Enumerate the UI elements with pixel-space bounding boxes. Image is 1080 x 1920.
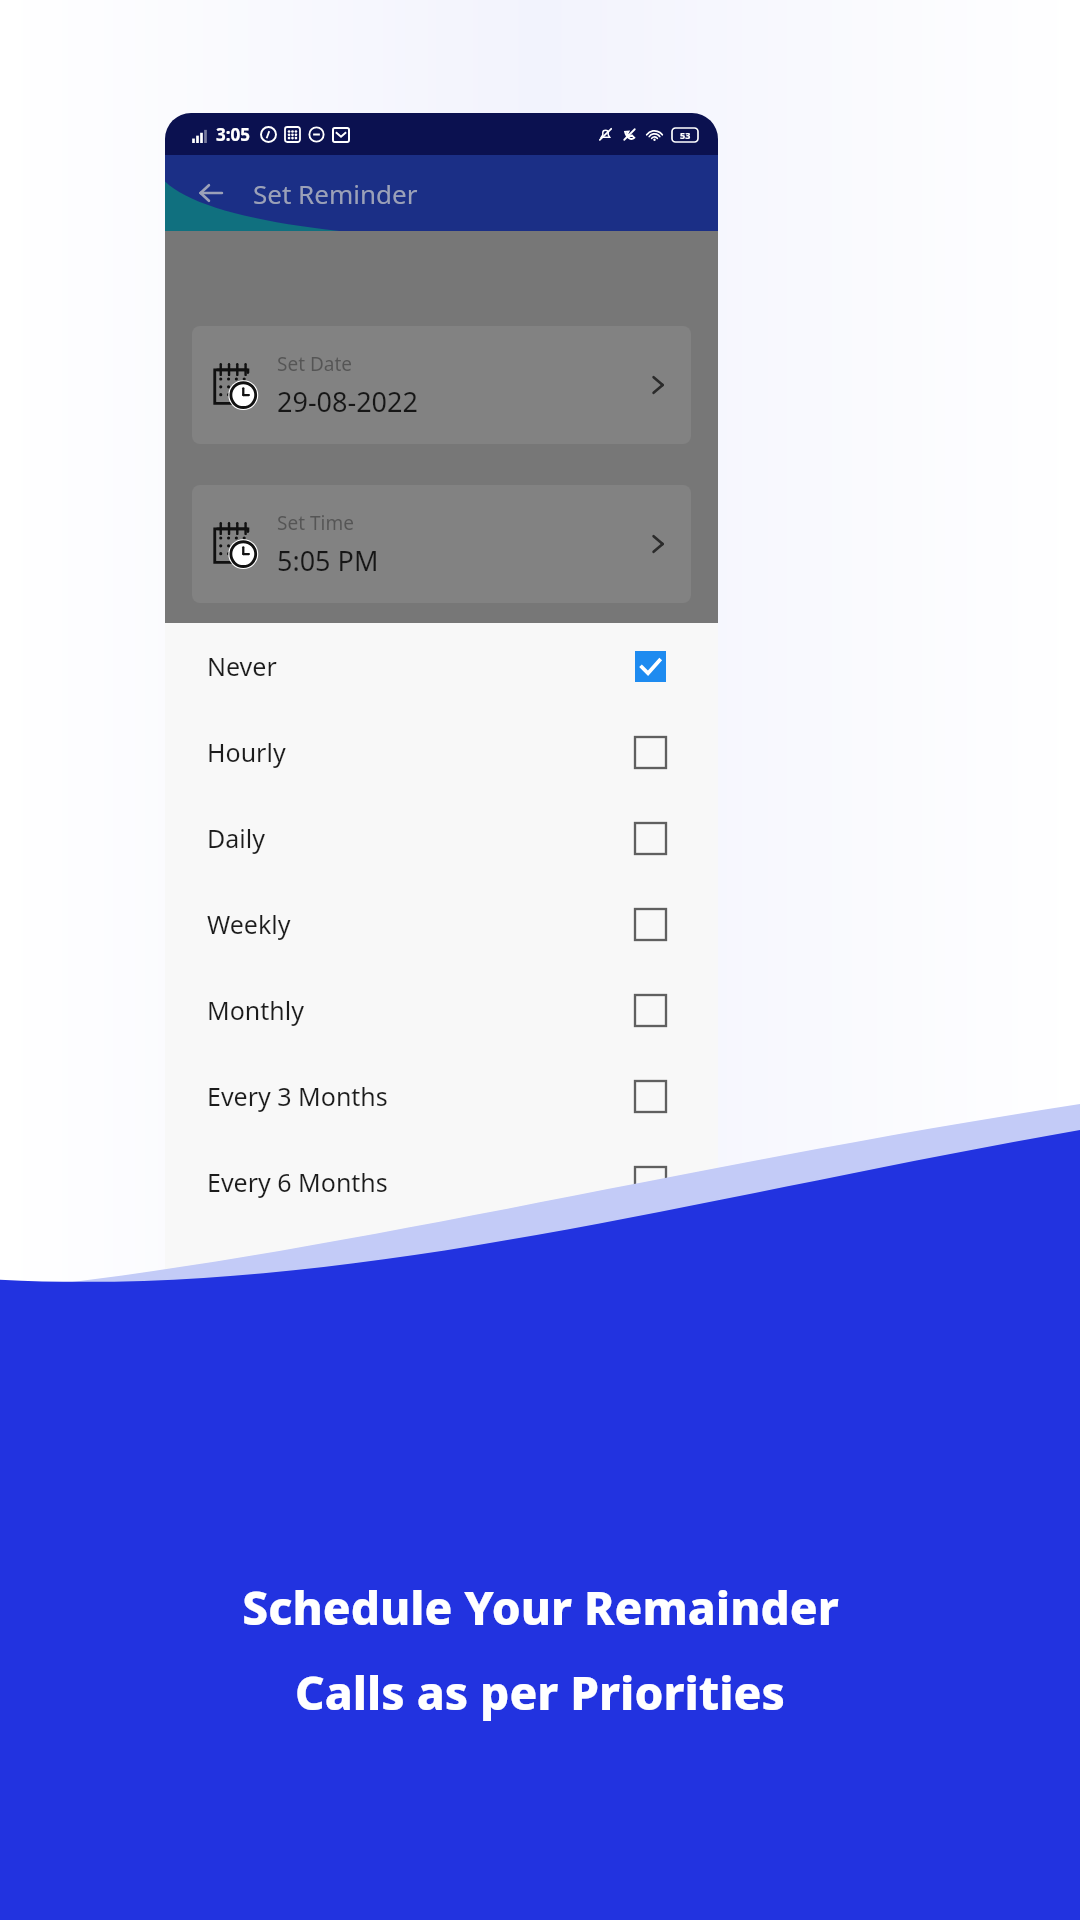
staticText: Schedule Your Remainder [242, 1576, 839, 1639]
button[interactable]: Every 3 Months [165, 1053, 718, 1139]
button[interactable]: Weekly [165, 881, 718, 967]
staticText: 3:05 [216, 123, 250, 146]
staticText: Monthly [207, 993, 304, 1027]
button[interactable]: Monthly [165, 967, 718, 1053]
staticText: Hourly [207, 735, 286, 769]
button[interactable]: Hourly [165, 709, 718, 795]
staticText: Weekly [207, 907, 291, 941]
staticText: Every 3 Months [207, 1079, 388, 1113]
button[interactable]: Set Date [192, 326, 691, 444]
button[interactable]: Daily [165, 795, 718, 881]
staticText: 5:05 PM [277, 542, 379, 579]
staticText: Never [207, 649, 277, 683]
staticText: Set Date [277, 351, 353, 377]
button[interactable]: Never [165, 623, 718, 709]
button[interactable]: Back [187, 169, 235, 217]
staticText: Daily [207, 821, 265, 855]
staticText: Calls as per Priorities [295, 1661, 785, 1724]
staticText: Set Reminder [253, 176, 418, 211]
staticText: Every 6 Months [207, 1165, 388, 1199]
button[interactable]: Set Time [192, 485, 691, 603]
staticText: 29-08-2022 [277, 383, 418, 420]
staticText: 53 [680, 129, 691, 141]
staticText: Set Time [277, 510, 354, 536]
button[interactable]: Every 6 Months [165, 1139, 718, 1225]
